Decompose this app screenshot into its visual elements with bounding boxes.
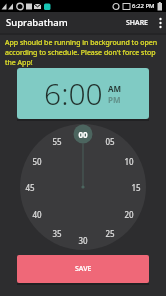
staticText: 10 — [124, 156, 134, 167]
staticText: 55 — [52, 136, 62, 147]
staticText: PM — [108, 94, 121, 105]
button[interactable]: SAVE — [17, 255, 149, 283]
staticText: 25 — [105, 228, 115, 239]
staticText: 20 — [124, 209, 134, 220]
staticText: 6:00 — [44, 73, 103, 114]
staticText: SAVE — [75, 264, 92, 274]
staticText: SHARE — [126, 18, 148, 28]
staticText: 40 — [32, 209, 42, 220]
staticText: App should be running in background to o… — [5, 38, 158, 48]
button[interactable]: 6:00 — [17, 68, 149, 119]
staticText: 15 — [131, 182, 141, 193]
staticText: according to schedule. Please don't forc… — [5, 48, 156, 58]
staticText: 6:22 PM — [132, 2, 155, 10]
button[interactable]: SHARE — [120, 14, 154, 32]
staticText: the App! — [5, 58, 33, 68]
staticText: 00 — [78, 129, 88, 140]
staticText: 50 — [32, 156, 42, 167]
staticText: 05 — [105, 136, 115, 147]
staticText: 35 — [52, 228, 62, 239]
button[interactable] — [154, 15, 166, 31]
staticText: Suprabatham — [6, 16, 68, 29]
staticText: 30 — [78, 235, 88, 246]
staticText: AM — [108, 83, 122, 94]
staticText: 45 — [25, 182, 35, 193]
